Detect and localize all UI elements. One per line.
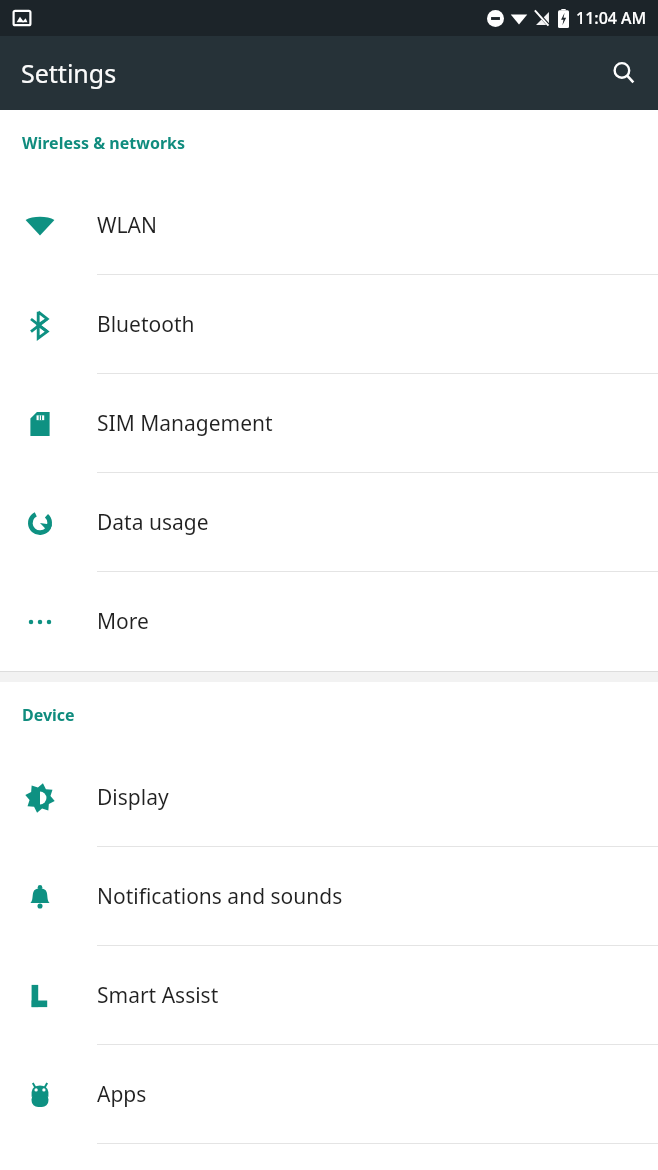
staticText: Display — [97, 783, 169, 812]
staticText: Settings — [21, 56, 117, 90]
button[interactable]: Smart Assist — [0, 946, 658, 1045]
button[interactable]: Apps — [0, 1045, 658, 1144]
button[interactable]: Bluetooth — [0, 275, 658, 374]
button[interactable]: More — [0, 572, 658, 671]
button[interactable]: Search — [600, 49, 648, 97]
staticText: Device — [22, 704, 75, 726]
staticText: 11:04 AM — [576, 7, 647, 29]
staticText: Data usage — [97, 508, 209, 537]
button[interactable]: Display — [0, 748, 658, 847]
staticText: Bluetooth — [97, 310, 195, 339]
staticText: WLAN — [97, 211, 157, 240]
button[interactable]: SIM Management — [0, 374, 658, 473]
staticText: Wireless & networks — [22, 132, 186, 154]
button[interactable]: Notifications and sounds — [0, 847, 658, 946]
staticText: SIM Management — [97, 409, 273, 438]
staticText: Smart Assist — [97, 981, 219, 1010]
staticText: Notifications and sounds — [97, 882, 343, 911]
button[interactable]: Data usage — [0, 473, 658, 572]
button[interactable]: WLAN — [0, 176, 658, 275]
staticText: More — [97, 607, 149, 636]
staticText: Apps — [97, 1080, 147, 1109]
